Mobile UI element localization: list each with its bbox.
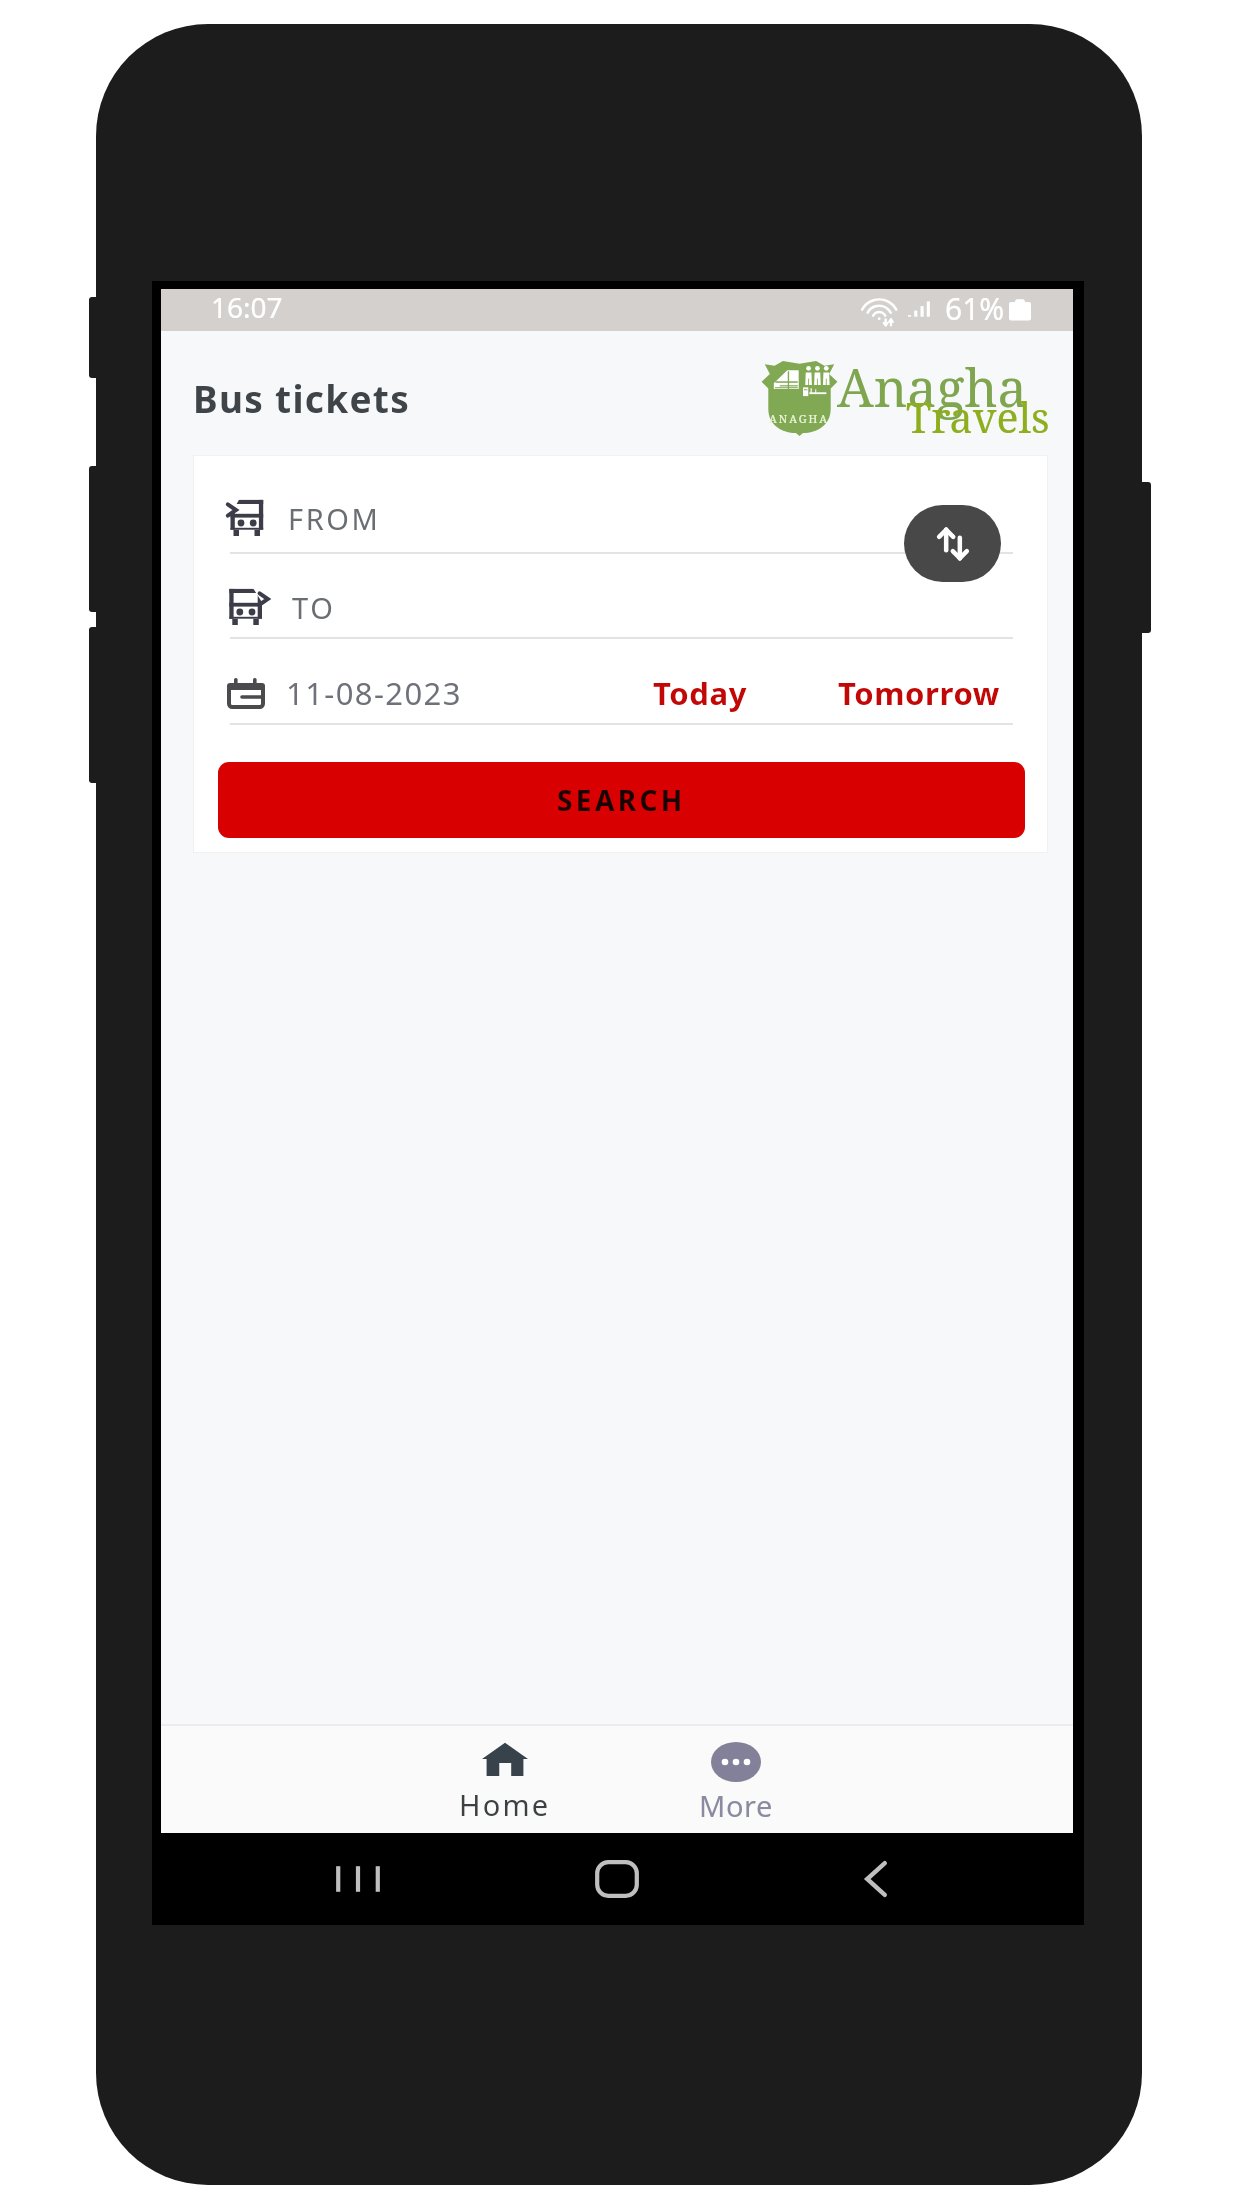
button[interactable]: Tomorrow — [828, 664, 1010, 722]
staticText: 16:07 — [211, 288, 283, 326]
staticText: ANAGHA — [769, 411, 830, 426]
staticText: 11-08-2023 — [286, 672, 462, 714]
staticText: More — [699, 1786, 774, 1825]
staticText: 61% — [945, 288, 1005, 329]
button[interactable]: Swap source and destination — [904, 505, 1001, 582]
staticText: Bus tickets — [193, 373, 411, 423]
staticText: TO — [292, 588, 336, 627]
staticText: FROM — [288, 499, 381, 538]
button[interactable]: Today — [643, 664, 757, 722]
button[interactable]: Recents — [313, 1833, 403, 1924]
button[interactable]: TO — [194, 577, 1047, 637]
button[interactable]: FROM — [194, 488, 1047, 548]
button[interactable]: Home — [572, 1833, 662, 1924]
button[interactable]: More — [666, 1734, 806, 1833]
staticText: Anagha — [837, 351, 1027, 422]
button[interactable]: Back — [831, 1833, 921, 1924]
staticText: Today — [653, 672, 747, 714]
button[interactable]: SEARCH — [218, 762, 1025, 838]
staticText: Travels — [906, 389, 1050, 445]
button[interactable]: Home — [435, 1734, 575, 1832]
staticText: SEARCH — [557, 781, 686, 819]
staticText: Home — [459, 1785, 551, 1824]
staticText: Tomorrow — [838, 672, 1000, 714]
